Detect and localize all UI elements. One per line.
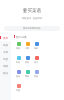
button[interactable]: 水果 [23, 40, 32, 54]
staticText: 新鲜直达 · 品质优选 [0, 17, 64, 20]
button[interactable]: 粮油 [0, 69, 11, 76]
button[interactable]: 推荐 [0, 34, 11, 41]
staticText: 海鲜 [34, 47, 39, 50]
button[interactable]: 肉蛋 [0, 55, 11, 62]
button[interactable]: 肉蛋 [14, 82, 23, 96]
button[interactable]: 粮油 [14, 68, 23, 82]
staticText: 调味 [25, 75, 30, 78]
button[interactable]: 水果 [0, 48, 11, 55]
staticText: 搜索你想要的商品 [23, 27, 41, 30]
staticText: 热门分类 [16, 35, 27, 38]
staticText: 推荐 [3, 36, 9, 39]
staticText: 水果 [3, 50, 9, 53]
staticText: 水果 [25, 47, 30, 50]
button[interactable]: 蔬菜 [14, 40, 23, 54]
staticText: 零食 [34, 75, 39, 78]
staticText: 粮油 [3, 71, 9, 74]
staticText: 海鲜 [3, 64, 9, 67]
button[interactable]: 搜索你想要的商品 [4, 26, 60, 31]
staticText: 饮料 [25, 61, 30, 64]
staticText: 粮油 [16, 75, 21, 78]
button[interactable]: 海鲜 [32, 40, 41, 54]
staticText: 乳品 [16, 61, 21, 64]
button[interactable]: 调味 [23, 68, 32, 82]
button[interactable]: 零食 [32, 68, 41, 82]
staticText: 要买菜谱 [0, 8, 64, 14]
staticText: 酒水 [34, 61, 39, 64]
staticText: 肉蛋 [16, 89, 21, 92]
button[interactable]: 海鲜 [0, 62, 11, 69]
button[interactable]: 饮料 [23, 54, 32, 68]
staticText: 蔬菜 [3, 43, 9, 46]
button[interactable]: 酒水 [32, 54, 41, 68]
button[interactable]: 乳品 [14, 54, 23, 68]
staticText: 肉蛋 [3, 57, 9, 60]
button[interactable]: 蔬菜 [0, 41, 11, 48]
staticText: 蔬菜 [16, 47, 21, 50]
